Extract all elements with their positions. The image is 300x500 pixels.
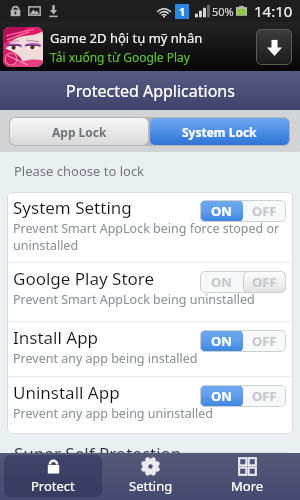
button[interactable]: Game 2D hội tụ mỹ nhân bbox=[0, 22, 300, 71]
button[interactable]: Setting bbox=[102, 455, 199, 497]
staticText: OFF bbox=[252, 202, 277, 220]
staticText: OFF bbox=[252, 387, 277, 405]
staticText: 14:10 bbox=[254, 1, 293, 21]
staticText: Setting bbox=[129, 477, 173, 495]
button[interactable]: App Lock bbox=[10, 118, 148, 145]
button[interactable]: Protect bbox=[4, 455, 102, 497]
staticText: OFF bbox=[252, 273, 277, 291]
staticText: System Setting bbox=[13, 196, 132, 219]
button[interactable]: System Setting bbox=[7, 192, 293, 262]
staticText: ON bbox=[211, 202, 232, 220]
staticText: Protect bbox=[31, 477, 75, 495]
staticText: System Lock bbox=[182, 124, 257, 140]
button[interactable]: Uninstall App bbox=[7, 377, 293, 434]
staticText: Prevent any app being installed bbox=[13, 350, 198, 367]
staticText: Install App bbox=[13, 326, 99, 349]
button[interactable]: More bbox=[199, 455, 296, 497]
button[interactable] bbox=[7, 452, 293, 463]
staticText: Prevent any app being uninstalled bbox=[13, 405, 213, 422]
staticText: Prevent Smart AppLock being uninstalled bbox=[13, 291, 255, 308]
staticText: ON bbox=[211, 273, 232, 291]
staticText: Prevent Smart AppLock being force stoped… bbox=[13, 220, 280, 253]
button[interactable]: Install App bbox=[7, 322, 293, 376]
staticText: Protected Applications bbox=[66, 80, 235, 102]
staticText: Game 2D hội tụ mỹ nhân bbox=[50, 29, 203, 47]
staticText: 50% bbox=[212, 4, 234, 19]
button[interactable]: System Lock bbox=[150, 118, 289, 145]
staticText: Uninstall App bbox=[13, 381, 120, 404]
staticText: ON bbox=[211, 387, 232, 405]
button[interactable]: ON bbox=[200, 200, 286, 222]
button[interactable]: ON bbox=[200, 385, 286, 407]
staticText: More bbox=[231, 477, 264, 495]
staticText: OFF bbox=[252, 332, 277, 350]
staticText: 1 bbox=[179, 4, 186, 19]
button[interactable]: Download bbox=[256, 29, 292, 65]
button[interactable]: Goolge Play Store bbox=[7, 263, 293, 321]
button[interactable]: ON bbox=[200, 330, 286, 352]
staticText: ON bbox=[211, 332, 232, 350]
button[interactable]: ON bbox=[200, 271, 286, 293]
staticText: Super Self Protection bbox=[14, 442, 182, 453]
staticText: Please choose to lock bbox=[14, 162, 145, 180]
staticText: Tải xuống từ Google Play bbox=[50, 49, 190, 65]
staticText: Goolge Play Store bbox=[13, 267, 155, 290]
staticText: App Lock bbox=[52, 124, 107, 140]
